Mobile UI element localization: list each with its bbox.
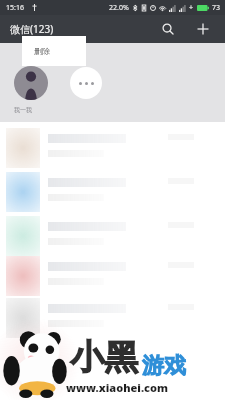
staticText: 小黑 [70, 336, 138, 379]
button[interactable]: Contact avatar [14, 66, 48, 100]
staticText: www.xiaohei.com [66, 380, 168, 395]
button[interactable]: More options [70, 67, 102, 99]
staticText: 游戏 [142, 352, 186, 380]
staticText: + [189, 3, 194, 13]
staticText: 我一我 [14, 106, 32, 114]
staticText: 微信(123) [10, 22, 54, 36]
button[interactable]: Search [155, 16, 181, 42]
staticText: 15:16 [6, 3, 24, 13]
staticText: 22.0% [109, 3, 129, 13]
button[interactable]: 删除 [22, 36, 86, 66]
staticText: 删除 [34, 46, 50, 56]
button[interactable]: Add [190, 16, 216, 42]
staticText: 73 [212, 3, 221, 13]
